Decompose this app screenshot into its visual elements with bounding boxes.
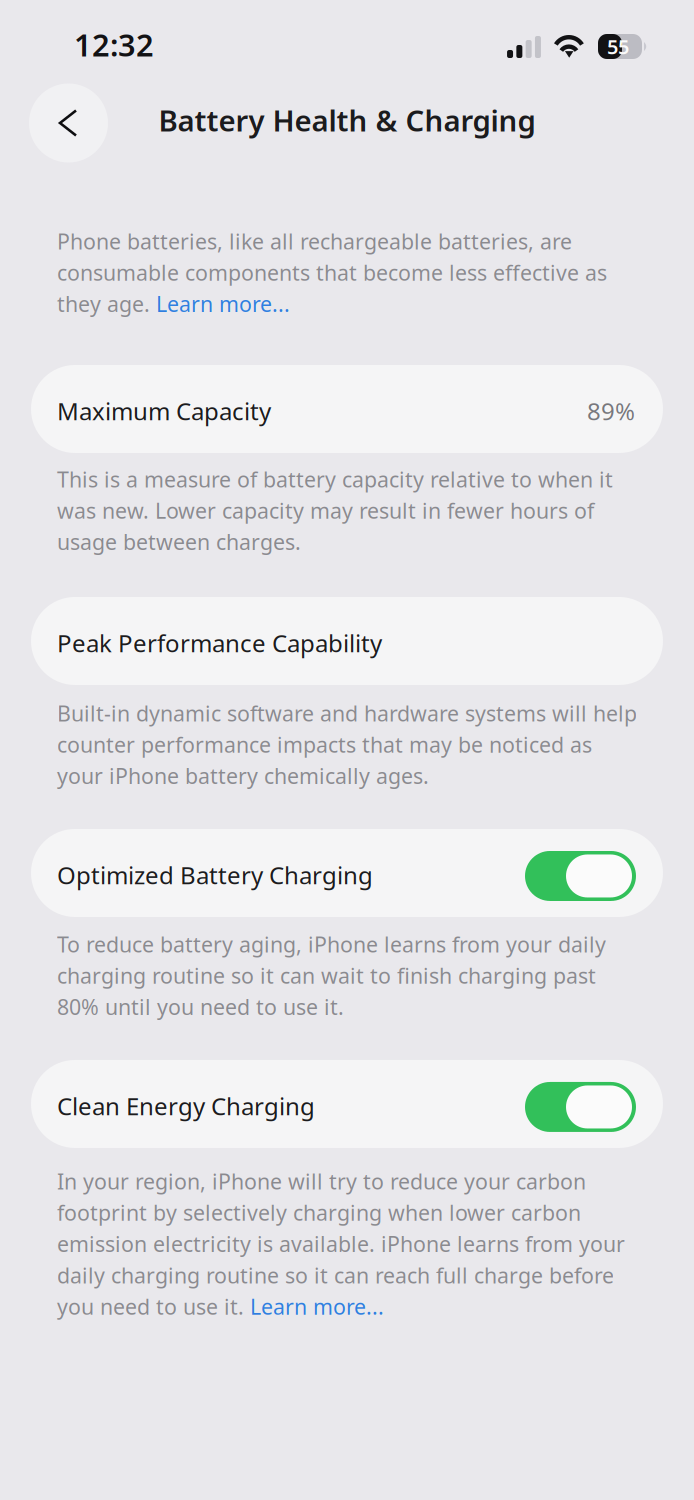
staticText: 12:32 xyxy=(74,24,154,65)
button[interactable]: Back xyxy=(29,83,108,162)
button[interactable]: Clean Energy Charging xyxy=(0,1060,694,1148)
staticText: To reduce battery aging, iPhone learns f… xyxy=(57,930,606,1021)
staticText: Battery Health & Charging xyxy=(158,100,535,139)
button[interactable]: Peak Performance Capability xyxy=(0,597,694,685)
staticText: Phone batteries, like all rechargeable b… xyxy=(57,227,607,318)
staticText: Clean Energy Charging xyxy=(57,1090,315,1122)
staticText: Maximum Capacity xyxy=(57,395,271,427)
staticText: Built-in dynamic software and hardware s… xyxy=(57,699,637,790)
staticText: 55 xyxy=(607,33,629,60)
staticText: This is a measure of battery capacity re… xyxy=(57,465,613,556)
staticText: 89% xyxy=(587,395,635,427)
staticText: In your region, iPhone will try to reduc… xyxy=(57,1167,625,1321)
button[interactable]: Optimized Battery Charging xyxy=(0,829,694,917)
staticText: Peak Performance Capability xyxy=(57,627,382,659)
staticText: Optimized Battery Charging xyxy=(57,859,373,891)
button[interactable]: Maximum Capacity xyxy=(0,365,694,453)
